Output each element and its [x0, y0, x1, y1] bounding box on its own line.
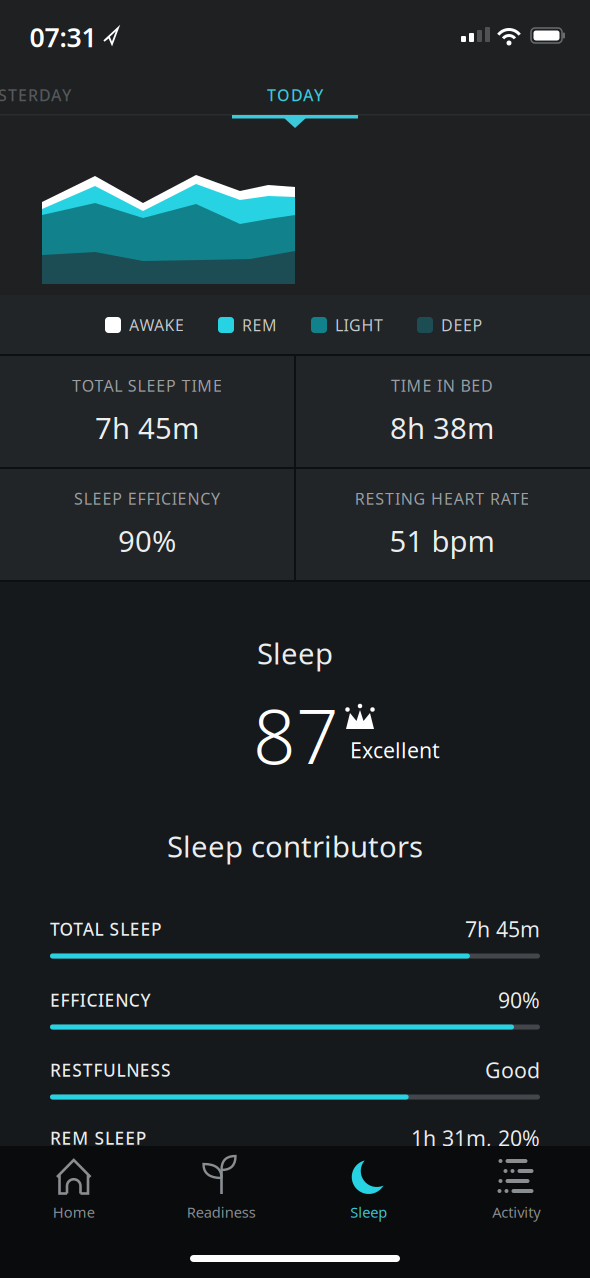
staticText: REM SLEEP [50, 1126, 147, 1149]
button[interactable]: Sleep [295, 1146, 442, 1238]
staticText: Sleep contributors [167, 826, 423, 865]
staticText: REM [242, 314, 277, 336]
staticText: 8h 38m [390, 408, 494, 447]
staticText: SLEEP EFFICIENCY [74, 488, 220, 509]
staticText: Good [485, 1056, 540, 1084]
staticText: TODAY [267, 84, 323, 106]
staticText: Sleep [350, 1202, 387, 1222]
staticText: 1h 31m, 20% [411, 1124, 540, 1152]
staticText: Readiness [187, 1202, 256, 1222]
button[interactable]: YESTERDAY [0, 75, 138, 115]
staticText: 87 [253, 685, 339, 785]
staticText: TOTAL SLEEP [50, 917, 162, 940]
staticText: LIGHT [335, 314, 383, 336]
staticText: 7h 45m [95, 408, 199, 447]
staticText: Home [53, 1202, 95, 1222]
staticText: RESTFULNESS [50, 1058, 171, 1081]
button[interactable]: Readiness [147, 1146, 295, 1238]
staticText: EFFICIENCY [50, 988, 150, 1011]
staticText: Sleep [257, 633, 333, 672]
staticText: 51 bpm [389, 521, 494, 560]
button[interactable]: Activity [442, 1146, 590, 1238]
button[interactable]: Home [0, 1146, 147, 1238]
staticText: Excellent [350, 736, 440, 764]
staticText: TOTAL SLEEP TIME [72, 375, 222, 396]
staticText: TIME IN BED [391, 375, 493, 396]
staticText: RESTING HEART RATE [355, 488, 529, 509]
staticText: 90% [118, 521, 176, 560]
staticText: 90% [498, 986, 540, 1014]
staticText: AWAKE [129, 314, 184, 336]
staticText: 7h 45m [465, 915, 540, 943]
button[interactable]: TODAY [225, 75, 365, 115]
staticText: YESTERDAY [0, 84, 71, 106]
staticText: DEEP [441, 314, 482, 336]
staticText: 07:31 [29, 19, 96, 55]
staticText: Activity [492, 1202, 540, 1222]
